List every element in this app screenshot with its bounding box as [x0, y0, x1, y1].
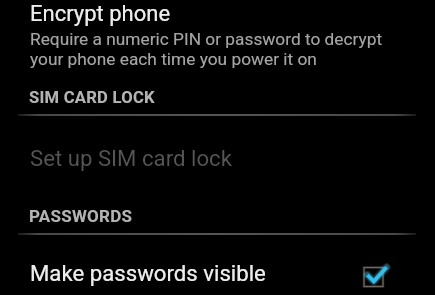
button[interactable]: Make passwords visible [0, 250, 435, 295]
staticText: PASSWORDS [29, 206, 133, 226]
staticText: Encrypt phone [30, 1, 171, 27]
staticText: Require a numeric PIN or password to dec… [30, 29, 383, 69]
button[interactable]: Encrypt phone [0, 0, 435, 80]
staticText: Make passwords visible [30, 260, 366, 286]
button[interactable]: Set up SIM card lock [0, 130, 435, 186]
staticText: SIM CARD LOCK [29, 88, 155, 107]
staticText: Set up SIM card lock [30, 145, 232, 171]
other: Make passwords visible [366, 250, 435, 295]
